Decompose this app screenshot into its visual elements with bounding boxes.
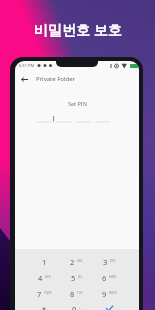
staticText: ABC xyxy=(77,259,83,263)
staticText: 0 xyxy=(72,304,77,310)
staticText: 1 xyxy=(42,257,47,267)
staticText: 비밀번호 보호 xyxy=(34,20,122,39)
button[interactable]: 0 xyxy=(60,302,93,310)
button[interactable]: Back xyxy=(18,73,30,85)
staticText: 2 xyxy=(70,257,75,267)
button[interactable]: 9 xyxy=(93,286,126,302)
button[interactable]: 3 xyxy=(93,254,126,270)
button[interactable]: * xyxy=(28,302,60,310)
staticText: GHI xyxy=(45,275,51,279)
staticText: WXYZ xyxy=(109,291,117,295)
staticText: 5 xyxy=(71,273,76,283)
staticText: 4 xyxy=(38,273,43,283)
staticText: 9 xyxy=(102,289,107,299)
staticText: * xyxy=(42,304,47,310)
staticText: + xyxy=(79,306,81,310)
staticText: DEF xyxy=(110,259,116,263)
staticText: 6 xyxy=(102,273,107,283)
button[interactable]: 7 xyxy=(28,286,60,302)
staticText: 7 xyxy=(37,289,42,299)
staticText: 6:31 PM xyxy=(19,63,35,68)
button[interactable]: 6 xyxy=(93,270,126,286)
staticText: 3 xyxy=(103,257,108,267)
staticText: TUV xyxy=(77,291,83,295)
staticText: JKL xyxy=(78,275,83,279)
staticText: PQRS xyxy=(44,291,52,295)
button[interactable]: 8 xyxy=(60,286,93,302)
button[interactable]: 2 xyxy=(60,254,93,270)
staticText: 8 xyxy=(70,289,75,299)
staticText: Set PIN xyxy=(68,100,87,107)
staticText: MNO xyxy=(109,275,117,279)
staticText: Private Folder xyxy=(36,75,76,83)
button[interactable]: 1 xyxy=(28,254,60,270)
button[interactable]: Confirm xyxy=(93,302,126,310)
button[interactable]: 5 xyxy=(60,270,93,286)
button[interactable]: 4 xyxy=(28,270,60,286)
